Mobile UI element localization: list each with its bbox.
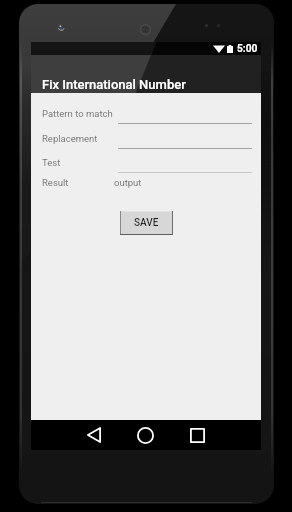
staticText: Result [42,177,69,188]
staticText: Replacement [42,133,98,144]
staticText: output [114,177,142,188]
staticText: Test [42,157,61,168]
staticText: Pattern to match [42,108,113,119]
staticText: 5:00 [237,43,258,55]
button[interactable]: Fix International Number [31,55,261,93]
button[interactable]: SAVE [120,211,173,235]
button[interactable]: Back [78,420,110,450]
button[interactable]: Recents [181,420,213,450]
staticText: Fix International Number [42,77,186,92]
staticText: SAVE [134,217,159,229]
button[interactable]: Home [129,420,161,450]
